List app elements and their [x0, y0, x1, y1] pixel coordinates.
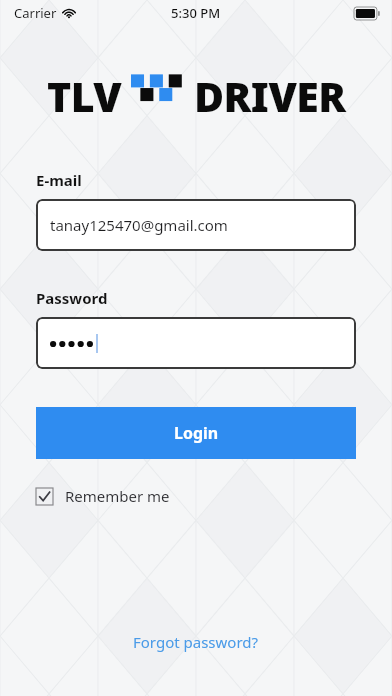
staticText: TLV [47, 68, 122, 124]
staticText: Remember me [65, 486, 170, 506]
staticText: 5:30 PM [171, 4, 221, 22]
staticText: DRIVER [194, 68, 346, 124]
button[interactable]: tanay125470@gmail.com [36, 199, 356, 251]
staticText: Login [174, 422, 219, 444]
staticText: tanay125470@gmail.com [50, 215, 228, 235]
button[interactable]: Remember me [36, 481, 170, 511]
button[interactable]: Forgot password? [123, 626, 269, 658]
staticText: Carrier [14, 4, 57, 22]
staticText: E-mail [36, 170, 82, 190]
button[interactable] [36, 317, 356, 369]
staticText: Forgot password? [133, 632, 259, 652]
button[interactable]: Login [36, 407, 356, 459]
staticText: Password [36, 288, 108, 308]
